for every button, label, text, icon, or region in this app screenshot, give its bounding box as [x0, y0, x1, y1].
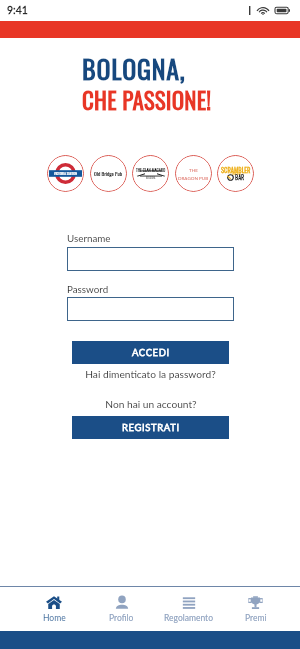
button[interactable]: The Clan Macaro	[132, 155, 169, 192]
button[interactable]: REGISTRATI	[72, 416, 229, 439]
staticText: Password	[67, 283, 109, 295]
button[interactable]: Home	[20, 587, 88, 631]
staticText: BOLOGNA	[146, 176, 156, 180]
staticText: DUCATI	[232, 171, 241, 176]
button[interactable]: Old Bridge Pub	[90, 155, 127, 192]
button[interactable]: Regolamento	[155, 587, 222, 631]
staticText: VICTORIA STATION	[54, 171, 78, 176]
button[interactable]: The Dragon Pub	[175, 155, 212, 192]
staticText: SCRAMBLER	[221, 165, 251, 175]
staticText: Regolamento	[164, 613, 213, 623]
staticText: CHE PASSIONE!	[82, 83, 212, 117]
staticText: Old Bridge Pub	[94, 170, 123, 178]
button[interactable]: Profilo	[88, 587, 155, 631]
staticText: BOLOGNA,	[82, 49, 186, 88]
button[interactable]: Username field	[67, 247, 234, 271]
staticText: THE CLAN MACARO	[136, 167, 166, 173]
button[interactable]: Password field	[67, 297, 234, 321]
staticText: Username	[67, 232, 111, 244]
staticText: THE	[189, 167, 198, 173]
button[interactable]: Hai dimenticato la password?	[67, 368, 234, 380]
button[interactable]: Scrambler Ducati	[217, 155, 254, 192]
staticText: REGISTRATI	[122, 422, 180, 433]
staticText: Non hai un account?	[105, 398, 197, 410]
staticText: Profilo	[109, 613, 134, 623]
staticText: BAR	[235, 173, 245, 182]
staticText: ACCEDI	[132, 347, 170, 358]
button[interactable]: Victoria Station	[47, 155, 84, 192]
staticText: Premi	[245, 613, 267, 623]
staticText: Home	[43, 613, 66, 623]
button[interactable]: Premi	[222, 587, 289, 631]
staticText: Hai dimenticato la password?	[85, 368, 216, 380]
button[interactable]: ACCEDI	[72, 341, 229, 364]
staticText: DRAGON PUB	[178, 175, 209, 181]
staticText: 9:41	[7, 4, 28, 17]
